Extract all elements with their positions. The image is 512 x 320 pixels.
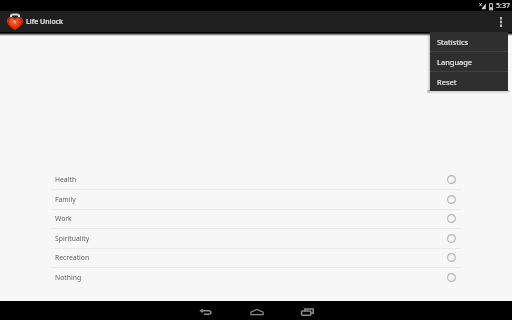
button[interactable]: More options [490,11,512,32]
button[interactable]: Back [180,301,231,320]
button[interactable]: Reset [430,72,508,91]
button[interactable]: Statistics [430,32,508,51]
staticText: Reset [437,77,457,87]
button[interactable]: Spirituality [51,229,461,249]
staticText: Language [437,57,473,67]
button[interactable]: Recreation [51,249,461,268]
staticText: Recreation [55,253,447,262]
staticText: Life Unlock [26,17,64,27]
staticText: Health [55,175,447,184]
staticText: Family [55,195,447,204]
button[interactable]: Recent apps [282,301,333,320]
button[interactable]: Home [231,301,282,320]
staticText: Work [55,214,447,223]
staticText: Nothing [55,273,447,282]
staticText: 5:37 [496,1,510,11]
button[interactable]: Nothing [51,268,461,288]
staticText: Spirituality [55,234,447,243]
button[interactable]: Language [430,52,508,71]
button[interactable]: Work [51,210,461,229]
button[interactable]: Health [51,171,461,190]
staticText: Statistics [437,37,469,47]
button[interactable]: Family [51,190,461,210]
